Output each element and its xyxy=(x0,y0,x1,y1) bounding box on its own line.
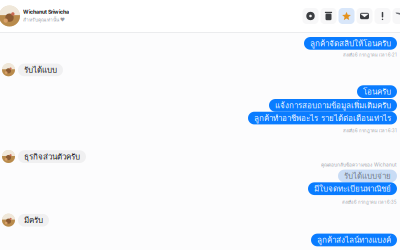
staticText: ส่งเมื่อ 6 กรกฎาคม เวลา 6:35 xyxy=(342,199,397,206)
staticText: ส่งเมื่อ 6 กรกฎาคม เวลา 6:31 xyxy=(343,127,397,134)
button[interactable]: More options xyxy=(392,4,400,28)
staticText: ลูกค้าส่งไลน์ทางแบงค์ xyxy=(317,234,391,246)
button[interactable]: Mark as done xyxy=(302,4,319,28)
staticText: ลูกค้าจัดสลิปให้โอนครับ xyxy=(310,37,391,50)
staticText: ธุรกิจส่วนตัวครับ xyxy=(24,150,80,163)
staticText: ส่งเมื่อ 6 กรกฎาคม เวลา 6:21 xyxy=(343,52,397,58)
staticText: คุณตอบกลับข้อความของ Wichanut xyxy=(321,161,397,169)
staticText: รับได้แบบ xyxy=(24,64,57,76)
staticText: Wichanut Sriwicha xyxy=(23,8,69,15)
button[interactable]: Report xyxy=(374,4,391,28)
staticText: มีครับ xyxy=(24,214,43,227)
staticText: โอนครับ xyxy=(363,85,391,98)
button[interactable]: Mark unread xyxy=(356,4,373,28)
button[interactable]: Wichanut Sriwicha xyxy=(0,5,69,26)
staticText: แจ้งการสอบถามข้อมูลเพิ่มเติมครับ xyxy=(275,99,391,112)
staticText: ลูกค้าทำอาชีพอะไร รายได้ต่อเดือนเท่าไร xyxy=(254,112,391,124)
button[interactable]: Star xyxy=(338,4,355,28)
staticText: รับได้แบบจ่าย xyxy=(344,170,391,182)
staticText: สำหรับคุณเท่านั้น ♥ xyxy=(23,16,65,23)
button[interactable]: Delete xyxy=(320,4,337,28)
staticText: มีใบจดทะเบียนพาณิชย์ xyxy=(314,182,391,195)
